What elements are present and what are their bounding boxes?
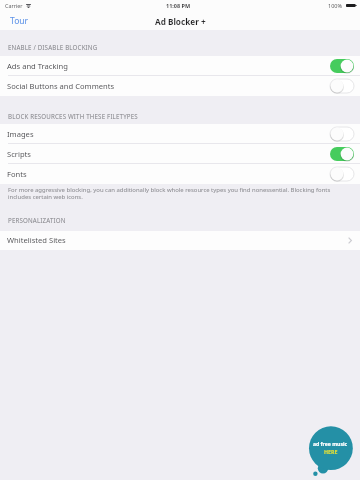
staticText: BLOCK RESOURCES WITH THESE FILETYPES xyxy=(8,112,138,120)
staticText: Ad Blocker + xyxy=(155,16,206,27)
staticText: PERSONALIZATION xyxy=(8,216,66,224)
button[interactable]: Fonts xyxy=(0,164,360,184)
staticText: Ads and Tracking xyxy=(7,61,68,71)
staticText: Carrier xyxy=(5,2,23,9)
staticText: HERE xyxy=(324,448,338,455)
staticText: Images xyxy=(7,129,34,139)
staticText: 11:08 PM xyxy=(166,2,191,9)
other: On xyxy=(330,59,354,73)
other: Off xyxy=(330,79,354,93)
button[interactable]: Images xyxy=(0,124,360,144)
staticText: ENABLE / DISABLE BLOCKING xyxy=(8,43,98,51)
staticText: Social Buttons and Comments xyxy=(7,81,115,91)
button[interactable]: Scripts xyxy=(0,144,360,164)
button[interactable]: Tour xyxy=(0,12,39,30)
button[interactable]: Whitelisted Sites xyxy=(0,231,360,250)
other: Off xyxy=(330,167,354,181)
other: On xyxy=(330,147,354,161)
staticText: 100% xyxy=(328,2,343,9)
button[interactable]: Ads and Tracking xyxy=(0,56,360,76)
staticText: Fonts xyxy=(7,169,27,179)
staticText: Tour xyxy=(10,15,29,27)
button[interactable]: ad free music HERE xyxy=(305,420,360,480)
staticText: Whitelisted Sites xyxy=(7,235,66,245)
other: Off xyxy=(330,127,354,141)
staticText: Scripts xyxy=(7,149,31,159)
staticText: For more aggressive blocking, you can ad… xyxy=(8,186,331,201)
staticText: ad free music xyxy=(313,441,348,448)
button[interactable]: Social Buttons and Comments xyxy=(0,76,360,96)
